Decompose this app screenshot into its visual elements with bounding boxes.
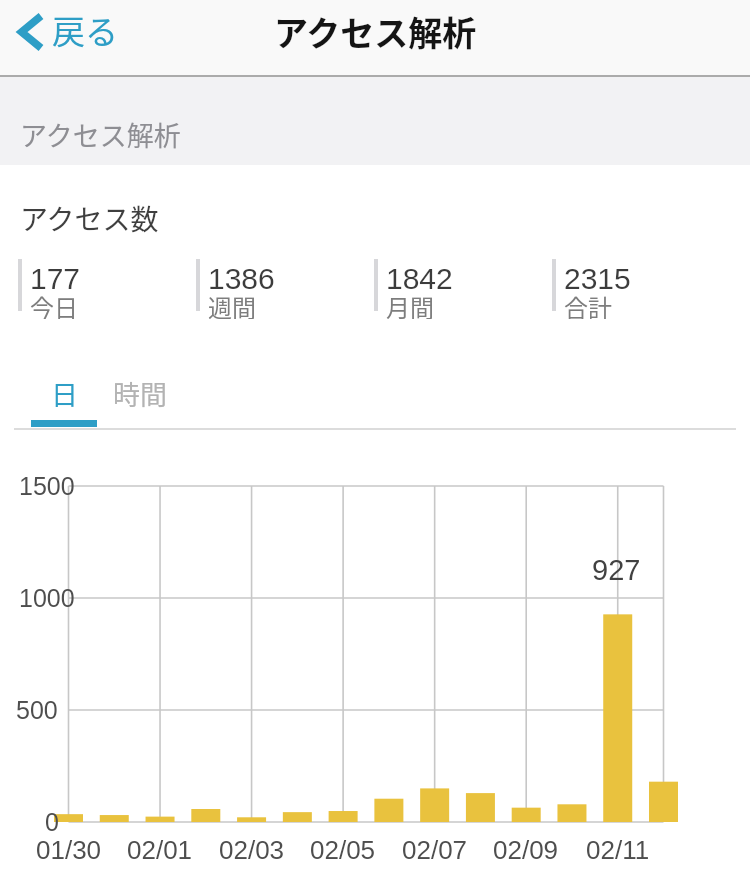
button[interactable] xyxy=(18,259,188,311)
staticText: 02/03 xyxy=(219,835,285,864)
staticText: 合計 xyxy=(564,289,612,319)
button[interactable]: 戻る xyxy=(18,6,118,58)
staticText: 500 xyxy=(16,696,58,724)
staticText: アクセス数 xyxy=(20,198,159,238)
button[interactable] xyxy=(196,259,366,311)
staticText: 177 xyxy=(30,262,81,296)
staticText: 02/05 xyxy=(310,835,376,864)
staticText: 927 xyxy=(592,554,641,586)
staticText: 01/30 xyxy=(36,835,102,864)
button[interactable]: 時間 xyxy=(107,371,173,415)
button[interactable]: 日 xyxy=(31,371,97,415)
staticText: アクセス解析 xyxy=(274,7,477,56)
staticText: 戻る xyxy=(52,6,118,54)
staticText: 2315 xyxy=(564,262,631,296)
staticText: 1000 xyxy=(19,584,75,612)
staticText: 月間 xyxy=(386,289,434,319)
staticText: 02/07 xyxy=(402,835,468,864)
staticText: 1842 xyxy=(386,262,453,296)
staticText: 1500 xyxy=(19,472,75,500)
staticText: 時間 xyxy=(113,374,167,413)
staticText: 02/09 xyxy=(493,835,559,864)
staticText: 週間 xyxy=(208,289,256,319)
staticText: 02/11 xyxy=(586,835,650,864)
button[interactable] xyxy=(374,259,544,311)
staticText: 日 xyxy=(51,374,78,413)
staticText: アクセス解析 xyxy=(20,115,181,154)
staticText: 今日 xyxy=(30,289,78,319)
staticText: 1386 xyxy=(208,262,275,296)
staticText: 02/01 xyxy=(127,835,193,864)
staticText: 0 xyxy=(45,808,59,836)
button[interactable] xyxy=(552,259,722,311)
